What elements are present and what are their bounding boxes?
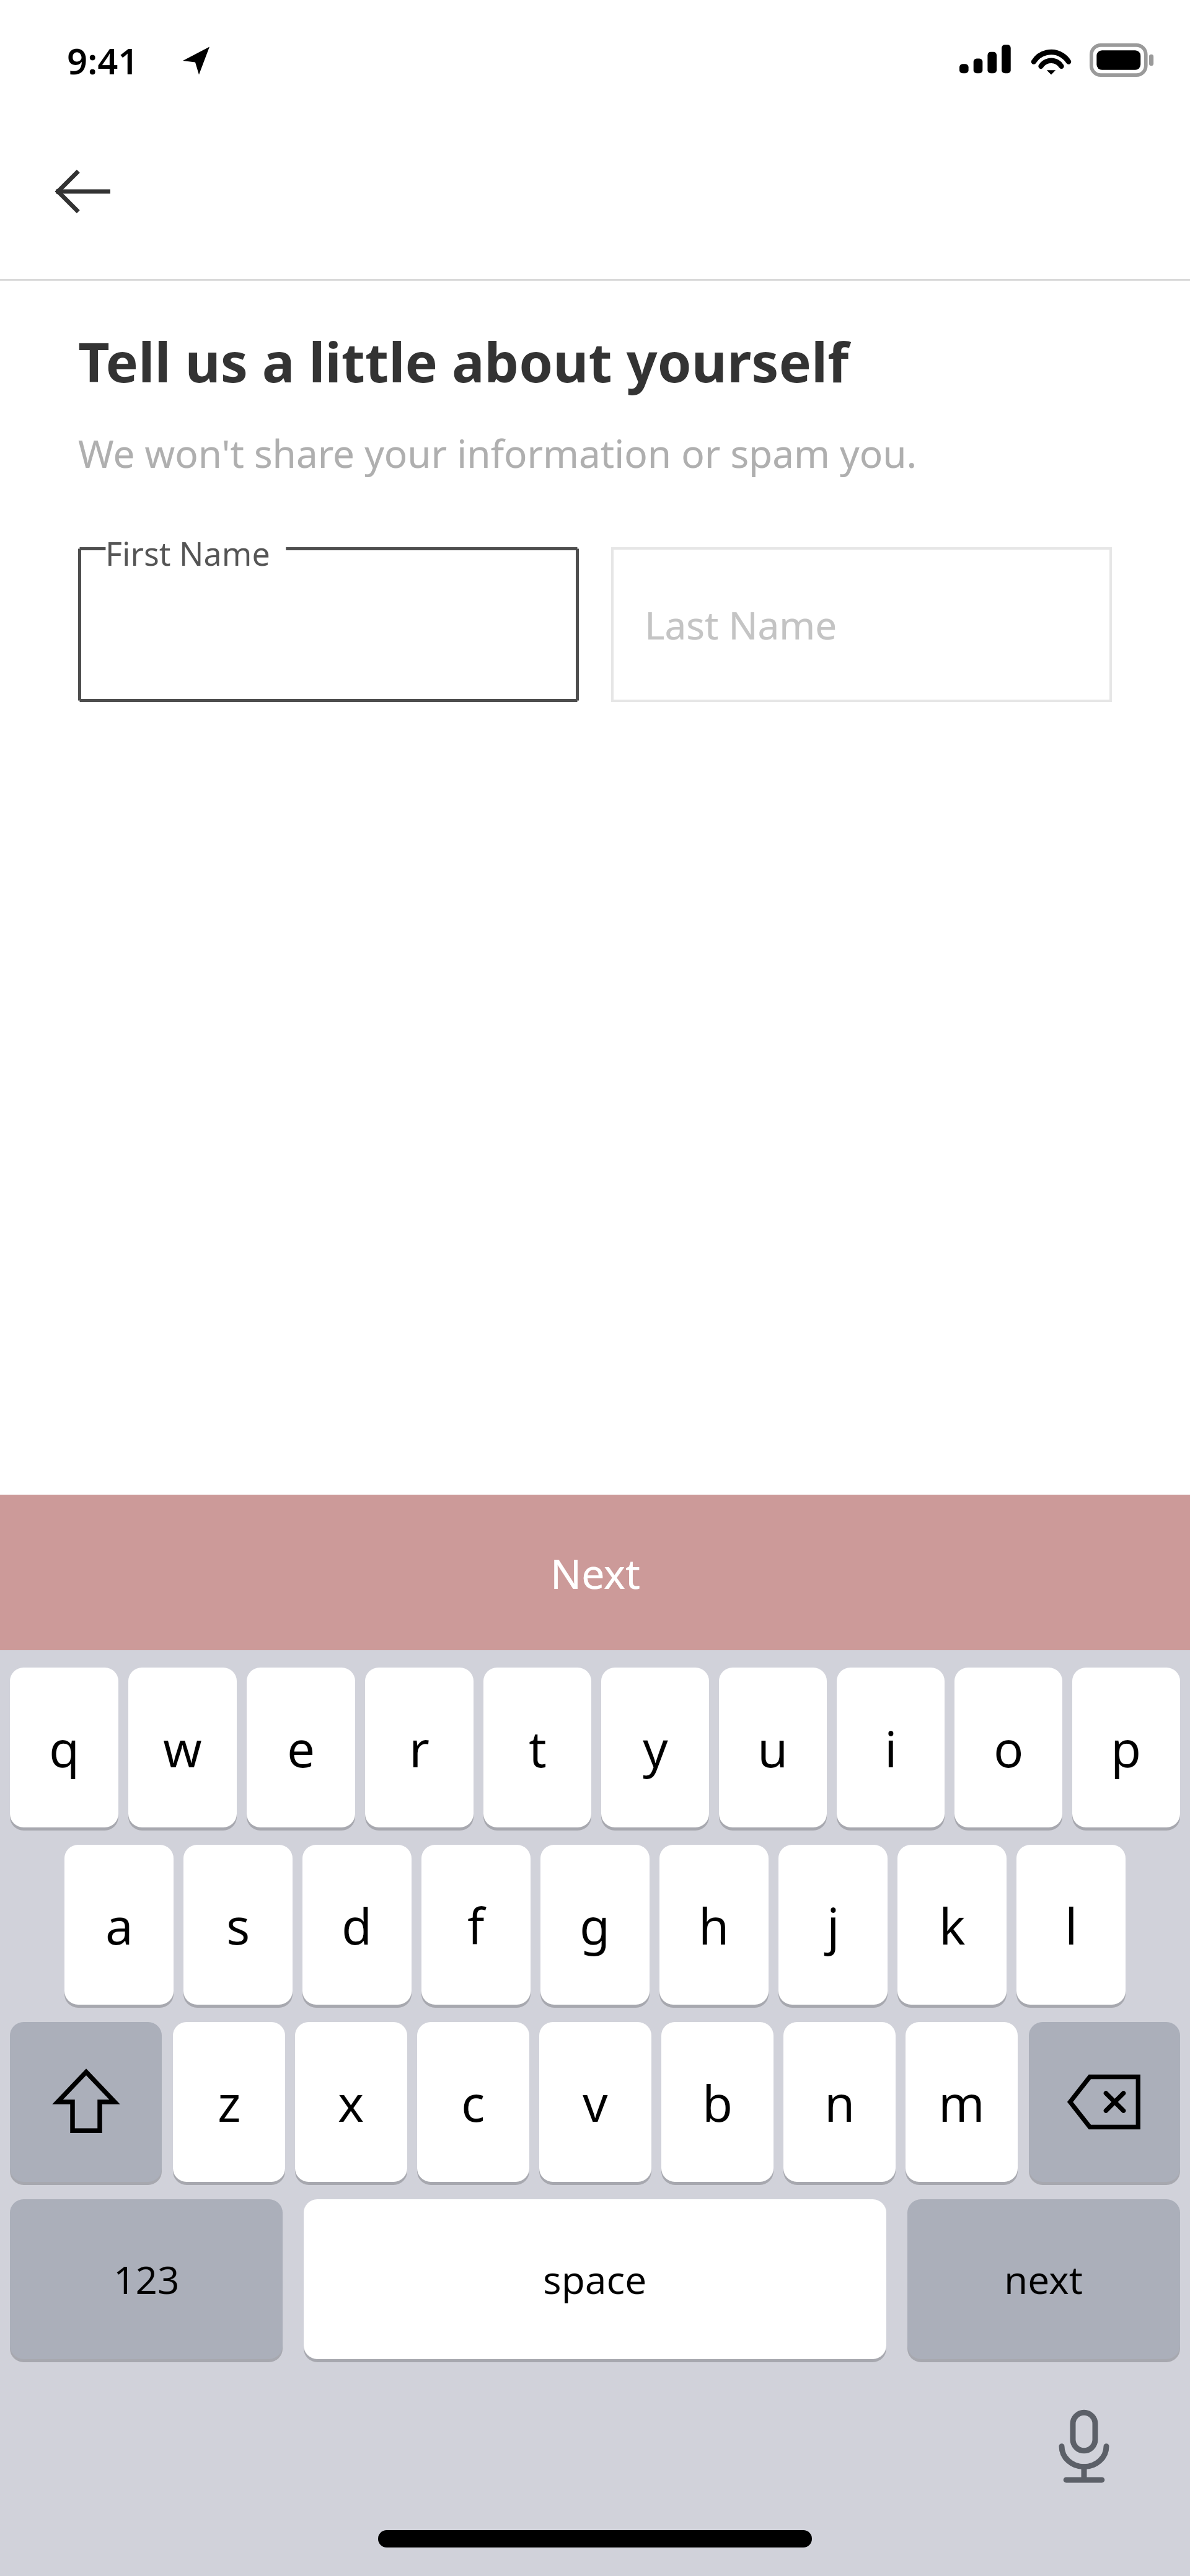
staticText: First Name xyxy=(105,531,270,575)
button[interactable]: c xyxy=(417,2022,529,2182)
staticText: 9:41 xyxy=(67,36,139,85)
button[interactable]: n xyxy=(783,2022,896,2182)
staticText: i xyxy=(884,1714,897,1782)
button[interactable]: o xyxy=(954,1668,1062,1827)
staticText: j xyxy=(827,1891,840,1959)
button[interactable]: Next xyxy=(0,1495,1190,1650)
staticText: k xyxy=(939,1891,966,1959)
button[interactable]: b xyxy=(661,2022,773,2182)
staticText: f xyxy=(467,1891,485,1959)
button[interactable]: a xyxy=(64,1845,174,2005)
staticText: e xyxy=(287,1714,315,1782)
button[interactable]: p xyxy=(1072,1668,1180,1827)
staticText: q xyxy=(49,1714,80,1782)
staticText: Last Name xyxy=(645,599,837,651)
button[interactable]: i xyxy=(837,1668,945,1827)
staticText: c xyxy=(461,2068,485,2136)
button[interactable]: Back xyxy=(46,154,120,229)
button[interactable]: j xyxy=(778,1845,888,2005)
staticText: d xyxy=(342,1891,372,1959)
button[interactable]: Last Name xyxy=(611,547,1112,702)
staticText: next xyxy=(1004,2253,1083,2305)
button[interactable]: g xyxy=(540,1845,650,2005)
button[interactable]: q xyxy=(10,1668,118,1827)
button[interactable]: Voice input xyxy=(1038,2401,1130,2494)
button[interactable]: r xyxy=(365,1668,474,1827)
staticText: a xyxy=(105,1891,133,1959)
staticText: t xyxy=(529,1714,547,1782)
button[interactable]: Shift xyxy=(10,2022,162,2182)
staticText: g xyxy=(580,1891,610,1959)
staticText: n xyxy=(824,2068,855,2136)
button[interactable]: d xyxy=(302,1845,412,2005)
staticText: y xyxy=(643,1714,668,1782)
staticText: h xyxy=(699,1891,729,1959)
button[interactable]: m xyxy=(906,2022,1018,2182)
button[interactable]: z xyxy=(173,2022,285,2182)
staticText: u xyxy=(757,1714,788,1782)
button[interactable]: s xyxy=(183,1845,293,2005)
button[interactable]: v xyxy=(539,2022,651,2182)
staticText: We won't share your information or spam … xyxy=(78,427,917,479)
button[interactable]: e xyxy=(247,1668,355,1827)
staticText: b xyxy=(702,2068,733,2136)
staticText: Next xyxy=(550,1545,640,1601)
staticText: 123 xyxy=(113,2253,180,2305)
staticText: w xyxy=(163,1714,202,1782)
staticText: Tell us a little about yourself xyxy=(78,324,849,398)
button[interactable]: space xyxy=(304,2199,886,2359)
staticText: z xyxy=(218,2068,241,2136)
staticText: s xyxy=(226,1891,250,1959)
button[interactable]: x xyxy=(295,2022,407,2182)
button[interactable]: f xyxy=(421,1845,531,2005)
button[interactable]: First Name xyxy=(78,547,579,702)
staticText: m xyxy=(938,2068,985,2136)
staticText: space xyxy=(543,2253,647,2305)
button[interactable]: l xyxy=(1016,1845,1126,2005)
button[interactable]: w xyxy=(128,1668,237,1827)
button[interactable]: h xyxy=(659,1845,769,2005)
staticText: v xyxy=(583,2068,608,2136)
button[interactable]: 123 xyxy=(10,2199,283,2359)
button[interactable]: k xyxy=(897,1845,1007,2005)
staticText: p xyxy=(1111,1714,1142,1782)
button[interactable]: t xyxy=(483,1668,591,1827)
button[interactable]: y xyxy=(601,1668,709,1827)
staticText: r xyxy=(409,1714,430,1782)
staticText: o xyxy=(994,1714,1024,1782)
button[interactable]: next xyxy=(907,2199,1180,2359)
staticText: l xyxy=(1065,1891,1078,1959)
staticText: x xyxy=(338,2068,364,2136)
button[interactable]: Backspace xyxy=(1029,2022,1180,2182)
button[interactable]: u xyxy=(719,1668,827,1827)
